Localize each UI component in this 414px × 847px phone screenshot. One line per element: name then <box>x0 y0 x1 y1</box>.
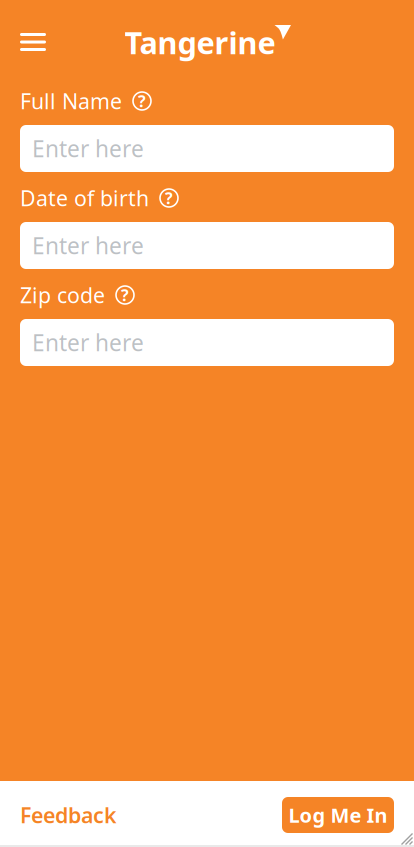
button[interactable]: Feedback <box>0 797 131 833</box>
staticText: Enter here <box>32 133 144 163</box>
staticText: ? <box>121 284 129 306</box>
staticText: Zip code <box>20 281 105 309</box>
staticText: ? <box>165 187 173 209</box>
staticText: Full Name <box>20 87 122 115</box>
button[interactable]: Menu <box>10 20 56 64</box>
button[interactable]: Enter here <box>20 222 394 269</box>
staticText: Tangerine <box>124 22 275 63</box>
button[interactable]: Log Me In <box>282 797 394 833</box>
staticText: Date of birth <box>20 184 149 212</box>
button[interactable]: Enter here <box>20 125 394 172</box>
staticText: ? <box>138 90 146 112</box>
staticText: Log Me In <box>288 802 387 828</box>
staticText: Enter here <box>32 230 144 260</box>
staticText: Enter here <box>32 327 144 357</box>
button[interactable]: Enter here <box>20 319 394 366</box>
staticText: Feedback <box>20 801 117 829</box>
